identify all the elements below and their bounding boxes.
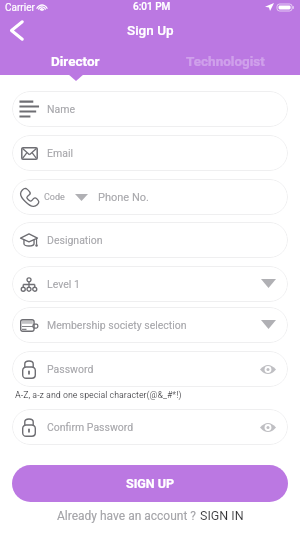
staticText: A-Z, a-z and one special character(@&_#*… <box>15 390 182 400</box>
staticText: Email <box>47 147 73 159</box>
staticText: Name <box>47 103 75 115</box>
staticText: Technologist <box>186 53 265 69</box>
button[interactable]: Code <box>12 179 288 215</box>
button[interactable]: Director <box>0 47 150 74</box>
staticText: SIGN UP <box>126 476 175 491</box>
button[interactable]: SIGN IN <box>200 508 244 523</box>
staticText: Membership society selection <box>47 319 187 331</box>
button[interactable]: Technologist <box>150 47 300 74</box>
button[interactable]: Show password <box>256 415 280 439</box>
staticText: Phone No. <box>98 191 149 204</box>
staticText: Password <box>47 363 94 375</box>
staticText: 6:01 PM <box>133 1 171 13</box>
staticText: Director <box>51 53 100 69</box>
staticText: Designation <box>47 234 103 246</box>
staticText: Carrier <box>5 2 35 14</box>
button[interactable]: Show password <box>256 357 280 381</box>
button[interactable]: Email <box>12 135 288 171</box>
button[interactable]: Expand <box>256 313 280 337</box>
button[interactable]: Designation <box>12 222 288 258</box>
staticText: Level 1 <box>47 278 80 290</box>
staticText: Code <box>44 192 65 203</box>
button[interactable]: Level 1 <box>12 266 288 302</box>
button[interactable]: Membership society selection <box>12 307 288 343</box>
button[interactable]: SIGN UP <box>12 465 288 502</box>
staticText: Sign Up <box>127 22 174 38</box>
button[interactable]: Back <box>5 19 29 42</box>
button[interactable]: Expand <box>256 272 280 296</box>
button[interactable]: Confirm Password <box>12 409 288 445</box>
staticText: Already have an account ? <box>57 509 197 523</box>
button[interactable]: Name <box>12 91 288 127</box>
staticText: SIGN IN <box>200 508 244 523</box>
button[interactable]: Password <box>12 351 288 387</box>
staticText: Confirm Password <box>47 421 134 433</box>
